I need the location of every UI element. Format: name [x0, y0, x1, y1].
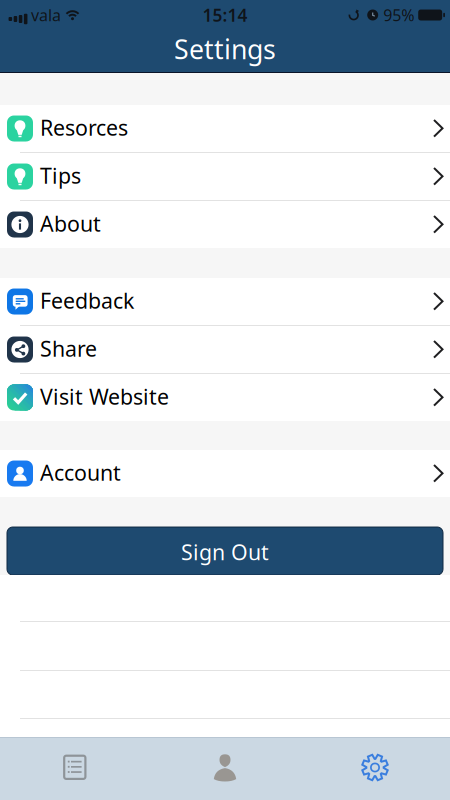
button[interactable]: Feedback — [0, 278, 450, 325]
button[interactable]: Resorces — [0, 105, 450, 152]
staticText: 95% — [383, 4, 414, 26]
button[interactable]: Account — [0, 450, 450, 497]
button[interactable]: Visit Website — [0, 374, 450, 421]
staticText: Account — [40, 458, 121, 487]
staticText: Visit Website — [40, 382, 169, 411]
staticText: Sign Out — [181, 538, 269, 566]
button[interactable]: Tips — [0, 153, 450, 200]
button[interactable]: Profile — [150, 738, 300, 800]
staticText: Feedback — [40, 286, 134, 315]
staticText: Resorces — [40, 113, 128, 142]
staticText: Tips — [40, 161, 81, 190]
button[interactable]: Settings — [300, 738, 450, 800]
button[interactable]: Share — [0, 326, 450, 373]
button[interactable]: News — [0, 738, 150, 800]
staticText: 15:14 — [202, 3, 247, 26]
staticText: Share — [40, 334, 97, 363]
button[interactable]: About — [0, 201, 450, 248]
button[interactable]: Sign Out — [7, 527, 443, 575]
staticText: Settings — [174, 31, 276, 67]
staticText: vala — [31, 4, 61, 26]
staticText: About — [40, 209, 101, 238]
